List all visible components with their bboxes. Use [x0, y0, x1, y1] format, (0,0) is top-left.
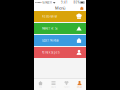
staticText: Market ve Su: [42, 27, 58, 30]
button[interactable]: Yemek Sepeti: [34, 47, 86, 58]
staticText: Menü: [55, 5, 65, 11]
button[interactable]: Basket: [80, 6, 86, 10]
staticText: Turkcell: [42, 1, 52, 4]
staticText: 9:41: [61, 1, 68, 4]
button[interactable]: Hesap: [73, 78, 86, 90]
staticText: Lezzet Noktası: [42, 39, 59, 42]
staticText: 80%: [74, 1, 80, 4]
staticText: Restoranlar: [42, 15, 57, 18]
button[interactable]: Market ve Su: [34, 23, 86, 34]
staticText: Yemek Sepeti: [42, 51, 60, 54]
button[interactable]: Lezzet Noktası: [34, 35, 86, 46]
button[interactable]: Ana: [34, 78, 47, 90]
button[interactable]: Favori: [60, 78, 73, 90]
staticText: Hesap: [77, 86, 82, 88]
button[interactable]: Restoranlar: [34, 11, 86, 22]
button[interactable]: Sipariş: [47, 78, 60, 90]
